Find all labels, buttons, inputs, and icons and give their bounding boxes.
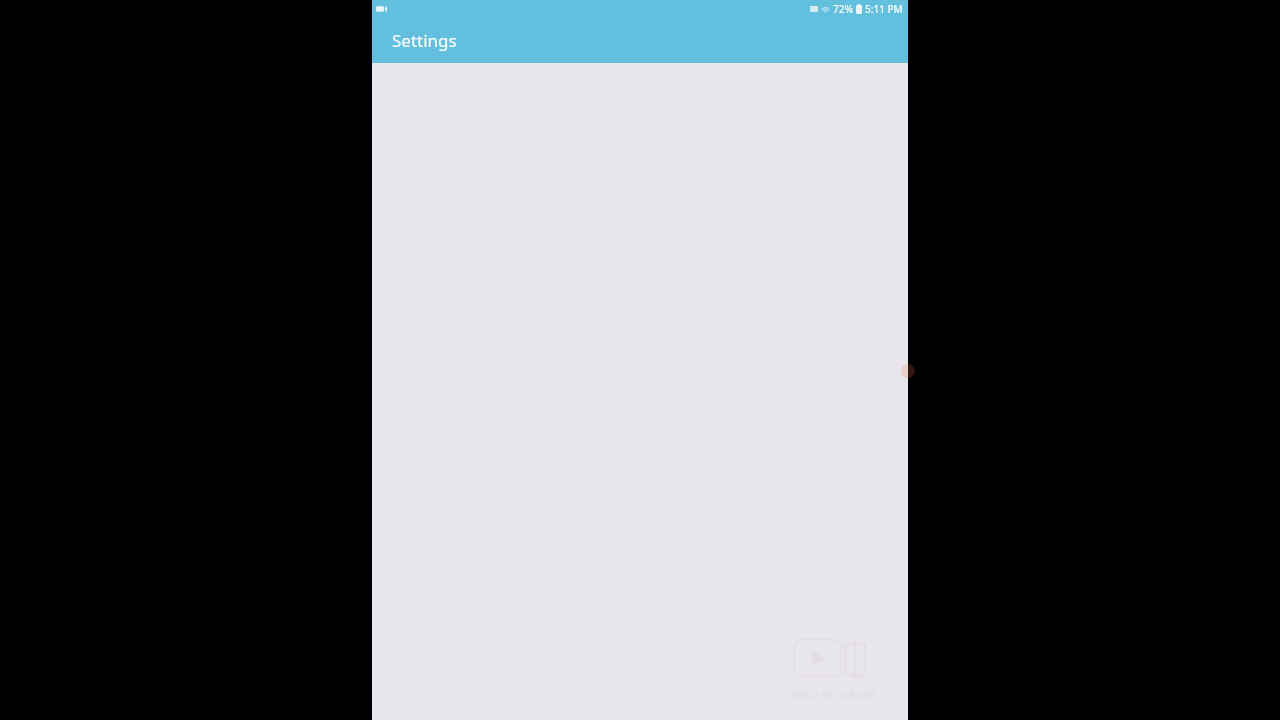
staticText: Settings	[392, 29, 457, 52]
staticText: 72%	[833, 2, 853, 16]
button[interactable]: Settings	[372, 18, 908, 63]
staticText: 5:11 PM	[865, 2, 903, 16]
